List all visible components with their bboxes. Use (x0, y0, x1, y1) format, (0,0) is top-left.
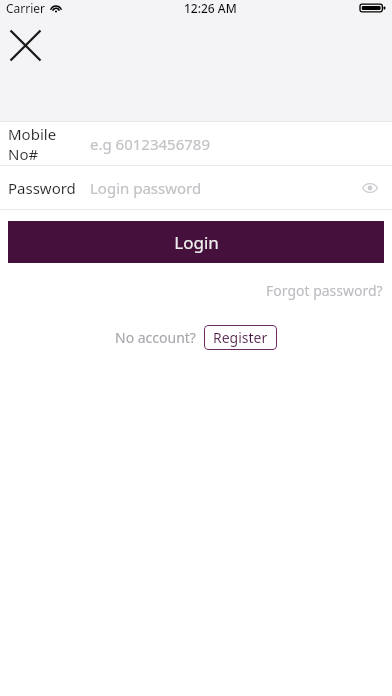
staticText: e.g 60123456789 (90, 134, 384, 154)
staticText: 12:26 AM (184, 0, 237, 16)
button[interactable]: Show password (356, 174, 384, 202)
button[interactable]: Register (204, 325, 277, 350)
button[interactable]: Forgot password? (264, 278, 385, 303)
staticText: Password (8, 178, 76, 198)
button[interactable]: Mobile No# (0, 122, 392, 165)
staticText: Mobile No# (8, 124, 90, 164)
button[interactable]: Login (8, 221, 384, 263)
staticText: Carrier (6, 0, 46, 16)
staticText: Login password (90, 178, 356, 198)
button[interactable]: Close (3, 23, 48, 68)
button[interactable]: Password (0, 166, 392, 209)
staticText: Login (174, 231, 219, 254)
staticText: Register (213, 328, 268, 347)
staticText: Forgot password? (266, 281, 383, 300)
staticText: No account? (115, 328, 196, 347)
